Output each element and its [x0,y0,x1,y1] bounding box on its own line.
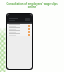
button[interactable]: Download wage slip [7,24,32,27]
button[interactable]: Download wage slip [7,27,32,30]
staticText: Consultation of employees' wage slips on… [5,2,59,9]
button[interactable]: Download wage slip [7,30,32,33]
button[interactable]: Download wage slip [7,33,32,36]
button[interactable] [7,14,32,24]
